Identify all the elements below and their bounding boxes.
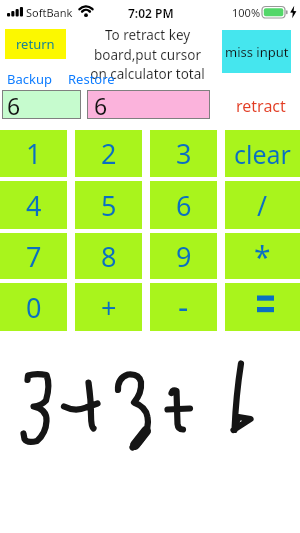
staticText: Restore [68,70,115,88]
staticText: / [257,187,268,224]
button[interactable]: 4 [0,181,67,229]
staticText: Backup [7,70,52,88]
button[interactable]: 6 [87,90,210,119]
button[interactable]: return [5,29,66,59]
staticText: 100% [232,5,261,20]
staticText: 0 [26,289,42,326]
button[interactable]: 9 [150,233,217,279]
button[interactable]: 1 [0,130,67,177]
staticText: 7 [26,238,42,275]
staticText: miss input [225,43,289,61]
button[interactable]: 0 [0,283,67,331]
staticText: return [16,35,55,53]
button[interactable]: / [225,181,300,229]
staticText: 5 [101,187,117,224]
button[interactable]: clear [225,130,300,177]
staticText: 6 [176,187,192,224]
staticText: retract [236,95,286,117]
button[interactable]: 8 [75,233,142,279]
button[interactable]: 3 [150,130,217,177]
button[interactable]: Restore [68,70,115,88]
button[interactable] [225,283,300,331]
staticText: 6 [94,90,108,119]
staticText: To retract key board,put cursor on calcu… [90,26,205,83]
staticText: 6 [7,90,21,119]
staticText: 9 [176,238,192,275]
button[interactable]: retract [236,95,286,117]
staticText: 4 [26,187,42,224]
staticText: SoftBank [26,5,73,20]
staticText: 7:02 PM [128,5,174,21]
staticText: 3 [176,135,192,172]
button[interactable]: - [150,283,217,331]
staticText: 2 [101,135,117,172]
staticText: + [101,289,117,326]
button[interactable]: 2 [75,130,142,177]
button[interactable]: 5 [75,181,142,229]
button[interactable]: 6 [150,181,217,229]
button[interactable]: Backup [7,70,52,88]
staticText: 8 [101,238,117,275]
staticText: - [178,285,189,329]
button[interactable]: 7 [0,233,67,279]
staticText: 1 [26,135,42,172]
button[interactable]: 6 [2,90,81,119]
staticText: clear [234,137,291,171]
button[interactable]: * [225,233,300,279]
button[interactable]: + [75,283,142,331]
button[interactable]: miss input [222,30,291,73]
staticText: * [254,236,271,277]
